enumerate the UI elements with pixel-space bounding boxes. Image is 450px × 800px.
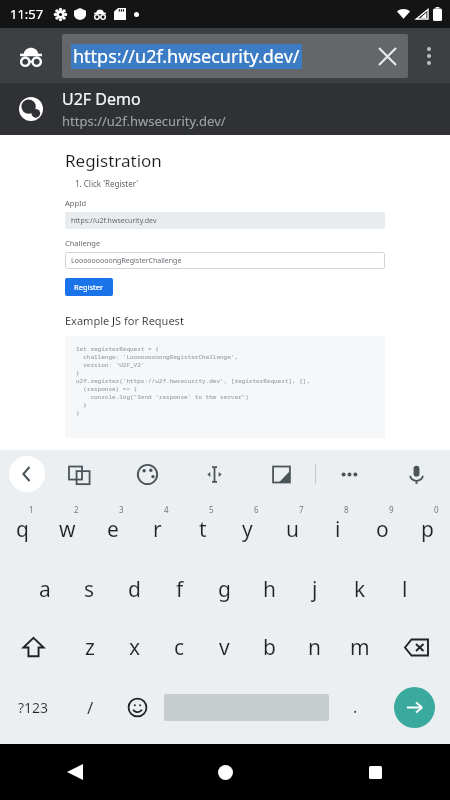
staticText: f — [176, 575, 184, 604]
button[interactable]: Text editing — [181, 450, 248, 498]
staticText: console.log("Send 'response' to the serv… — [76, 393, 249, 401]
button[interactable]: k — [337, 560, 382, 618]
button[interactable]: f — [157, 560, 202, 618]
staticText: Register — [74, 282, 104, 292]
button[interactable]: q — [0, 498, 45, 560]
staticText: e — [107, 515, 119, 544]
button[interactable]: r — [135, 498, 180, 560]
button[interactable]: o — [360, 498, 405, 560]
button[interactable]: t — [180, 498, 225, 560]
button[interactable]: Register — [65, 278, 113, 296]
staticText: 11:57 — [10, 5, 44, 23]
button[interactable]: a — [22, 560, 67, 618]
staticText: t — [199, 515, 207, 544]
button[interactable]: i — [315, 498, 360, 560]
button[interactable]: n — [292, 618, 337, 676]
staticText: Registration — [65, 149, 162, 172]
button[interactable]: w — [45, 498, 90, 560]
button[interactable]: Emoji — [114, 676, 161, 738]
button[interactable]: s — [67, 560, 112, 618]
staticText: } — [76, 401, 87, 409]
staticText: let registerRequest = { — [76, 345, 159, 353]
staticText: s — [84, 575, 95, 604]
button[interactable]: j — [292, 560, 337, 618]
staticText: o — [376, 515, 389, 544]
button[interactable]: Theme — [113, 450, 181, 498]
staticText: . — [353, 696, 358, 718]
button[interactable]: y — [225, 498, 270, 560]
button[interactable]: / — [67, 676, 114, 738]
button[interactable]: Back — [0, 744, 150, 800]
button[interactable]: More — [316, 450, 383, 498]
button[interactable]: b — [247, 618, 292, 676]
staticText: h — [263, 575, 276, 604]
button[interactable]: g — [202, 560, 247, 618]
staticText: https://u2f.hwsecurity.dev/ — [73, 44, 300, 69]
staticText: https://u2f.hwsecurity.dev — [71, 216, 157, 226]
staticText: LooooooooongRegisterChallenge — [71, 256, 182, 266]
staticText: 8 — [344, 504, 349, 515]
button[interactable]: Voice input — [383, 450, 450, 498]
button[interactable]: u — [270, 498, 315, 560]
button[interactable]: e — [90, 498, 135, 560]
button[interactable]: x — [112, 618, 157, 676]
button[interactable]: v — [202, 618, 247, 676]
staticText: ) — [76, 409, 80, 417]
button[interactable]: LooooooooongRegisterChallenge — [65, 252, 385, 269]
staticText: c — [174, 633, 185, 662]
staticText: 7 — [299, 504, 304, 515]
button[interactable]: h — [247, 560, 292, 618]
staticText: w — [59, 515, 76, 544]
button[interactable]: l — [382, 560, 427, 618]
button[interactable]: m — [337, 618, 382, 676]
staticText: 9 — [389, 504, 394, 515]
staticText: b — [263, 633, 276, 662]
staticText: y — [242, 515, 253, 544]
button[interactable]: d — [112, 560, 157, 618]
staticText: Challenge — [65, 238, 101, 248]
staticText: v — [219, 633, 230, 662]
button[interactable]: p — [405, 498, 450, 560]
staticText: version: 'U2F_V2' — [76, 361, 145, 369]
button[interactable]: Translate — [45, 450, 113, 498]
staticText: 1 — [29, 504, 34, 515]
staticText: 2 — [74, 504, 79, 515]
button[interactable]: Home — [150, 744, 300, 800]
staticText: ?123 — [18, 698, 49, 717]
button[interactable]: Shift — [0, 618, 67, 676]
staticText: r — [153, 515, 162, 544]
staticText: } — [76, 369, 80, 377]
button[interactable]: . — [332, 676, 379, 738]
button[interactable]: Back — [9, 456, 45, 492]
button[interactable]: Clear — [366, 35, 408, 77]
staticText: u — [286, 515, 299, 544]
staticText: p — [421, 515, 434, 544]
staticText: n — [308, 633, 321, 662]
button[interactable]: https://u2f.hwsecurity.dev/ — [62, 34, 408, 78]
staticText: challenge: 'LooooooooongRegisterChalleng… — [76, 353, 239, 361]
staticText: z — [85, 633, 95, 662]
staticText: g — [218, 575, 231, 604]
staticText: AppId — [65, 198, 87, 208]
button[interactable]: Recents — [300, 744, 450, 800]
button[interactable]: Delete — [382, 618, 450, 676]
staticText: / — [87, 696, 94, 719]
button[interactable]: More options — [408, 28, 450, 83]
staticText: m — [350, 633, 370, 662]
button[interactable]: U2F Demo — [0, 83, 450, 135]
button[interactable]: Go — [394, 687, 435, 728]
button[interactable]: https://u2f.hwsecurity.dev — [65, 212, 385, 229]
button[interactable]: ?123 — [0, 676, 67, 738]
staticText: k — [354, 575, 366, 604]
staticText: a — [39, 575, 51, 604]
button[interactable]: z — [67, 618, 112, 676]
button[interactable]: Incognito — [0, 28, 62, 83]
button[interactable]: Resize — [248, 450, 315, 498]
button[interactable]: c — [157, 618, 202, 676]
staticText: 3 — [119, 504, 124, 515]
staticText: j — [312, 575, 318, 604]
staticText: Example JS for Request — [65, 313, 184, 328]
staticText: 5 — [209, 504, 214, 515]
staticText: 1. Click 'Register' — [75, 178, 139, 189]
